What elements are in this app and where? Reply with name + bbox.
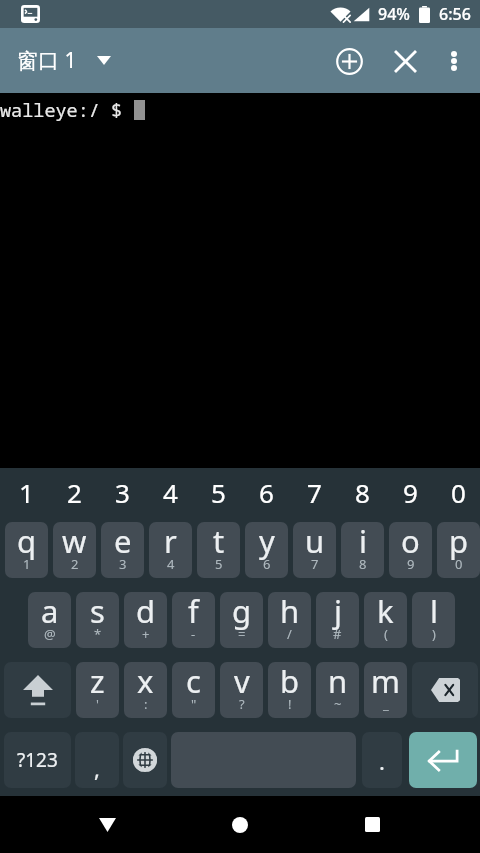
staticText: ' bbox=[96, 695, 99, 713]
staticText: 2 bbox=[71, 555, 79, 573]
button[interactable]: t bbox=[197, 522, 240, 578]
button[interactable]: 5 bbox=[197, 468, 240, 522]
staticText: l bbox=[430, 592, 438, 632]
button[interactable]: Recents bbox=[306, 796, 439, 853]
staticText: - bbox=[191, 625, 196, 643]
button[interactable]: m bbox=[364, 662, 407, 718]
staticText: 5 bbox=[211, 475, 226, 510]
staticText: z bbox=[90, 662, 105, 702]
button[interactable]: Shift bbox=[4, 662, 71, 718]
button[interactable]: x bbox=[124, 662, 167, 718]
button[interactable]: 6 bbox=[245, 468, 288, 522]
button[interactable]: . bbox=[362, 732, 402, 788]
staticText: 6 bbox=[263, 555, 271, 573]
staticText: 6:56 bbox=[439, 3, 471, 25]
staticText: 3 bbox=[119, 555, 127, 573]
button[interactable]: j bbox=[316, 592, 359, 648]
staticText: 7 bbox=[307, 475, 322, 510]
staticText: h bbox=[280, 592, 300, 632]
button[interactable]: 4 bbox=[149, 468, 192, 522]
staticText: 5 bbox=[215, 555, 223, 573]
staticText: 0 bbox=[451, 475, 466, 510]
staticText: _ bbox=[383, 695, 389, 713]
button[interactable]: 窗口 1 bbox=[0, 38, 125, 83]
button[interactable]: s bbox=[76, 592, 119, 648]
staticText: r bbox=[164, 522, 177, 562]
button[interactable]: ?123 bbox=[4, 732, 71, 788]
button[interactable]: u bbox=[293, 522, 336, 578]
staticText: f bbox=[188, 592, 199, 632]
button[interactable]: Back bbox=[41, 796, 173, 853]
button[interactable]: More options bbox=[433, 40, 475, 82]
staticText: ! bbox=[288, 695, 292, 713]
staticText: ?123 bbox=[17, 747, 58, 773]
staticText: b bbox=[280, 662, 300, 702]
button[interactable]: l bbox=[412, 592, 455, 648]
button[interactable]: h bbox=[268, 592, 311, 648]
button[interactable]: n bbox=[316, 662, 359, 718]
button[interactable]: New window bbox=[321, 33, 377, 89]
staticText: ~ bbox=[334, 695, 342, 713]
staticText: w bbox=[62, 522, 87, 562]
staticText: g bbox=[232, 592, 252, 632]
staticText: 1 bbox=[23, 555, 31, 573]
staticText: @ bbox=[44, 625, 56, 643]
button[interactable]: Change language bbox=[123, 732, 167, 788]
staticText: s bbox=[90, 592, 105, 632]
staticText: u bbox=[305, 522, 325, 562]
button[interactable]: g bbox=[220, 592, 263, 648]
button[interactable]: a bbox=[28, 592, 71, 648]
button[interactable]: Home bbox=[173, 796, 306, 853]
staticText: 窗口 1 bbox=[17, 46, 77, 75]
button[interactable]: 2 bbox=[53, 468, 96, 522]
button[interactable]: y bbox=[245, 522, 288, 578]
button[interactable]: v bbox=[220, 662, 263, 718]
button[interactable]: d bbox=[124, 592, 167, 648]
button[interactable]: Backspace bbox=[412, 662, 478, 718]
staticText: y bbox=[259, 522, 275, 562]
staticText: e bbox=[114, 522, 132, 562]
staticText: 4 bbox=[163, 475, 178, 510]
button[interactable]: , bbox=[75, 732, 119, 788]
staticText: m bbox=[371, 662, 400, 702]
staticText: 8 bbox=[359, 555, 367, 573]
button[interactable]: 3 bbox=[101, 468, 144, 522]
button[interactable]: o bbox=[389, 522, 432, 578]
button[interactable]: z bbox=[76, 662, 119, 718]
button[interactable]: f bbox=[172, 592, 215, 648]
staticText: # bbox=[333, 625, 342, 643]
staticText: a bbox=[41, 592, 59, 632]
staticText: x bbox=[137, 662, 154, 702]
staticText: : bbox=[144, 695, 148, 713]
staticText: 7 bbox=[311, 555, 319, 573]
button[interactable]: Enter bbox=[409, 732, 477, 788]
staticText: 94% bbox=[378, 3, 410, 25]
staticText: d bbox=[136, 592, 156, 632]
staticText: walleye:/ $ bbox=[0, 97, 134, 122]
staticText: * bbox=[94, 625, 102, 643]
staticText: 4 bbox=[167, 555, 175, 573]
button[interactable]: k bbox=[364, 592, 407, 648]
button[interactable]: 7 bbox=[293, 468, 336, 522]
staticText: n bbox=[328, 662, 348, 702]
staticText: ? bbox=[239, 695, 245, 713]
staticText: 9 bbox=[403, 475, 418, 510]
button[interactable]: p bbox=[437, 522, 480, 578]
staticText: 8 bbox=[355, 475, 370, 510]
button[interactable]: c bbox=[172, 662, 215, 718]
button[interactable]: r bbox=[149, 522, 192, 578]
button[interactable]: 8 bbox=[341, 468, 384, 522]
button[interactable]: e bbox=[101, 522, 144, 578]
button[interactable]: 9 bbox=[389, 468, 432, 522]
button[interactable]: q bbox=[5, 522, 48, 578]
button[interactable]: Close bbox=[377, 33, 433, 89]
staticText: c bbox=[186, 662, 201, 702]
staticText: p bbox=[449, 522, 469, 562]
button[interactable]: 1 bbox=[5, 468, 48, 522]
button[interactable]: w bbox=[53, 522, 96, 578]
button[interactable]: 0 bbox=[437, 468, 480, 522]
button[interactable]: b bbox=[268, 662, 311, 718]
button[interactable]: i bbox=[341, 522, 384, 578]
staticText: 3 bbox=[115, 475, 130, 510]
